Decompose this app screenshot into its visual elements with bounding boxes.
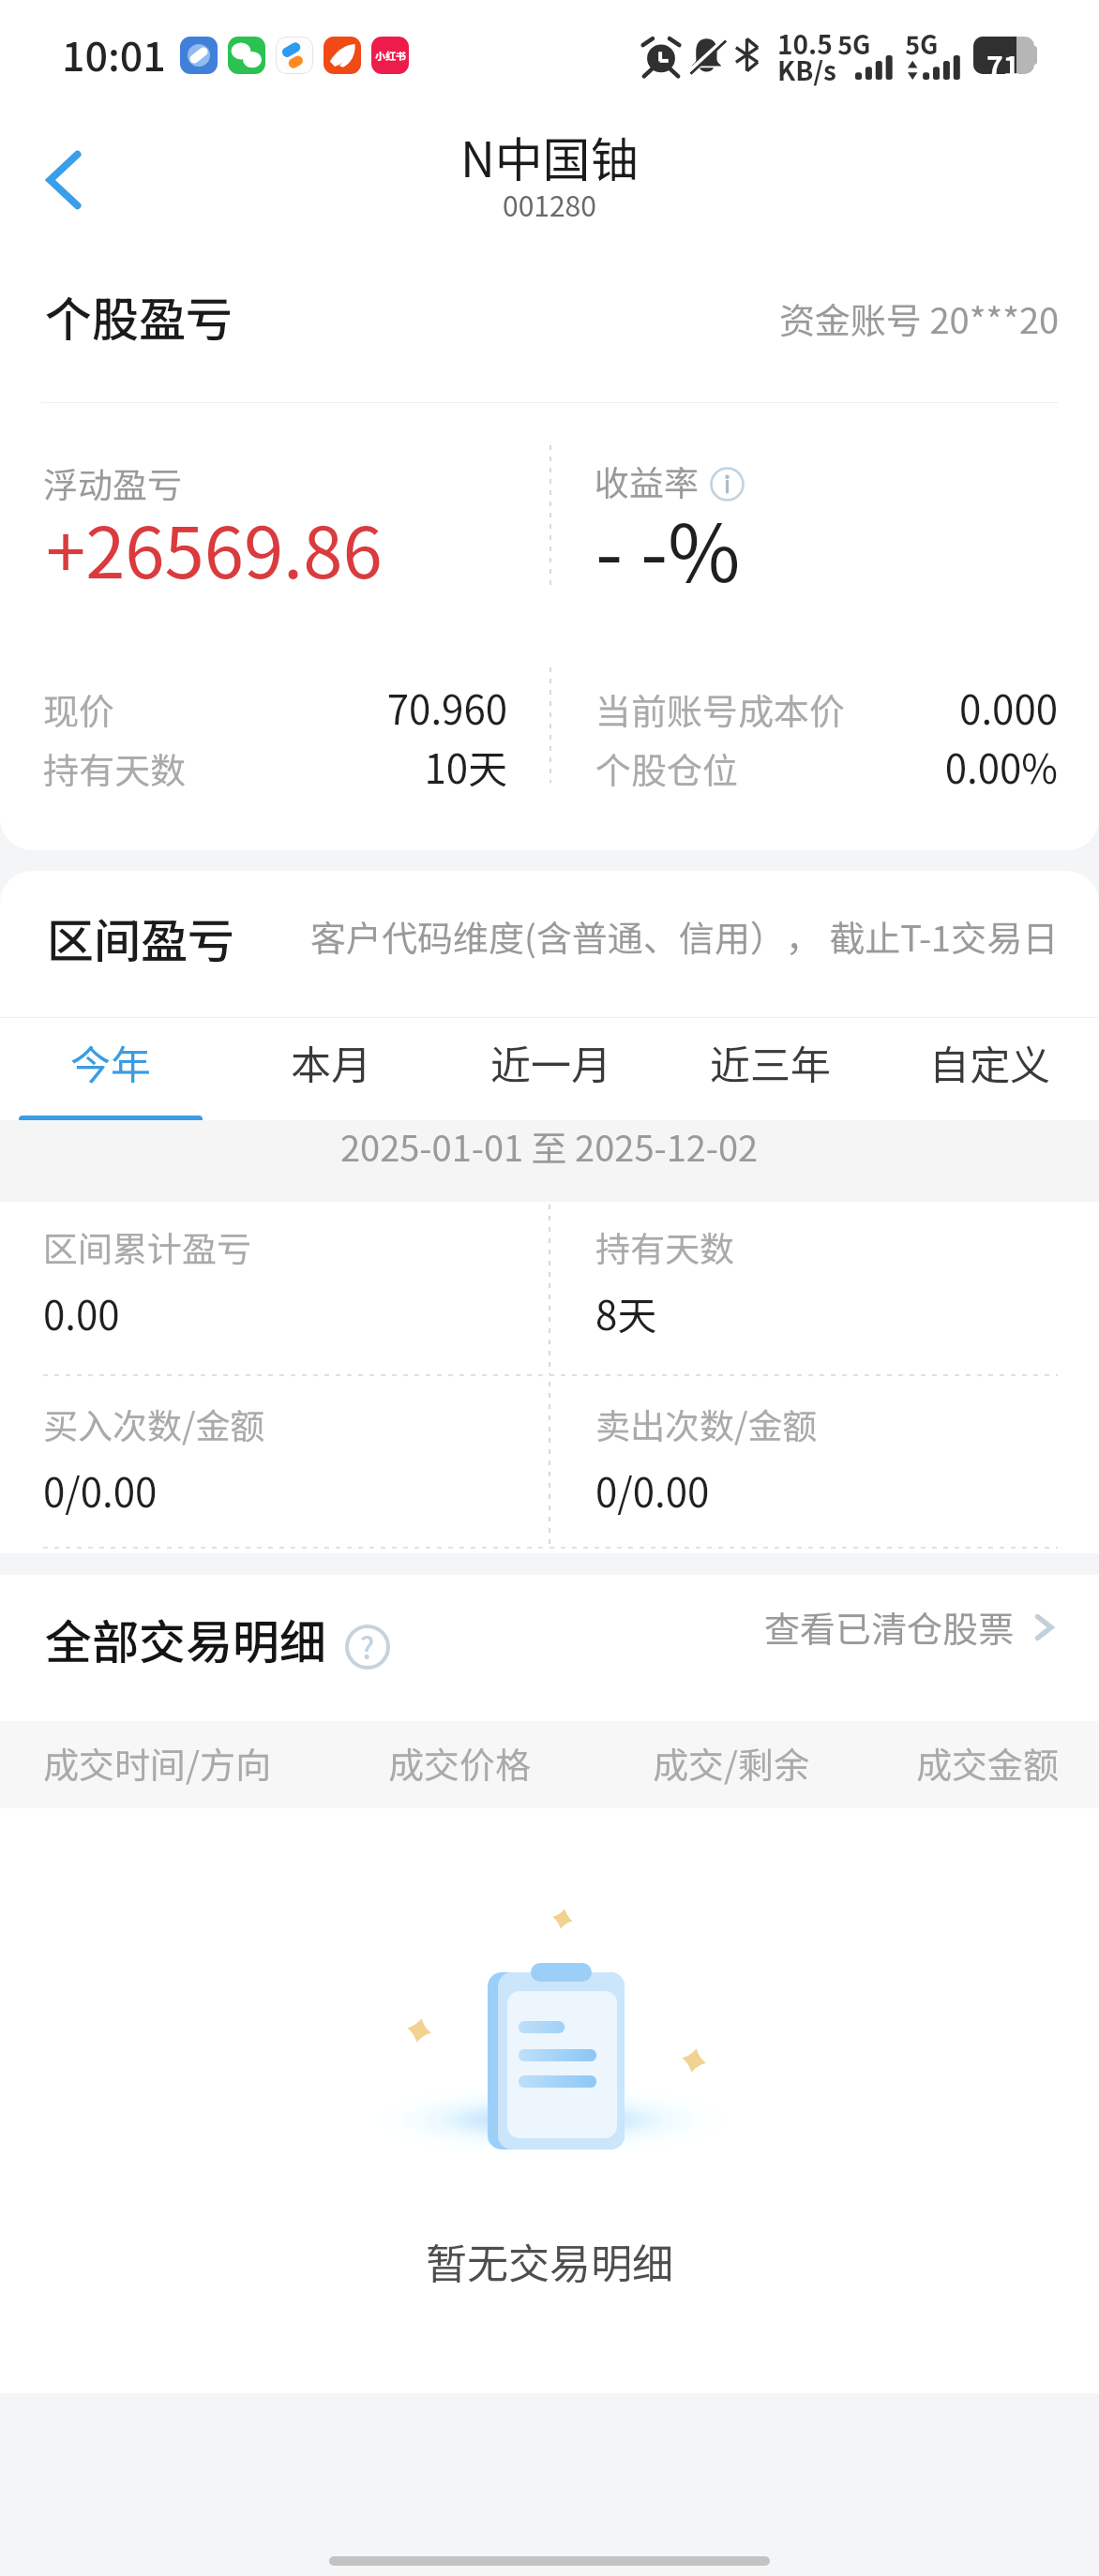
staticText: +26569.86 [46,496,383,599]
staticText: - -% [595,491,741,606]
staticText: 卖出次数/金额 [595,1399,818,1449]
staticText: 现价 [43,683,115,735]
staticText: 自定义 [929,1033,1050,1091]
staticText: 全部交易明细 [45,1605,326,1672]
staticText: 0.00% [683,738,1058,795]
staticText: 持有天数 [43,742,187,794]
staticText: 个股仓位 [595,742,739,794]
staticText: 小红书 [375,48,406,63]
staticText: 个股盈亏 [45,282,233,350]
staticText: 近一月 [490,1033,611,1091]
staticText: 5G [905,25,939,62]
staticText: 查看已清仓股票 [764,1601,1015,1653]
staticText: 浮动盈亏 [43,457,182,508]
button[interactable]: Back [34,145,103,215]
staticText: 10:01 [62,24,166,82]
staticText: ? [360,1625,375,1668]
staticText: 成交价格 [388,1737,532,1789]
staticText: KB/s [777,51,836,89]
staticText: 成交/剩余 [653,1737,809,1789]
staticText: 本月 [291,1033,371,1091]
staticText: 持有天数 [595,1221,734,1272]
staticText: 成交金额 [916,1737,1060,1789]
button[interactable]: 本月 [220,1011,441,1113]
staticText: 区间累计盈亏 [43,1221,251,1272]
staticText: 10.5 [777,24,833,63]
button[interactable]: 今年 [0,1011,220,1113]
staticText: 0.000 [683,679,1058,736]
staticText: 0/0.00 [43,1461,158,1519]
button[interactable]: Rate of return info [710,467,745,502]
staticText: 10天 [132,738,507,795]
staticText: 0.00 [43,1284,120,1341]
staticText: 当前账号成本价 [595,683,846,735]
button[interactable]: Help [345,1625,390,1670]
staticText: 买入次数/金额 [43,1399,265,1449]
staticText: 成交时间/方向 [43,1737,271,1789]
staticText: 001280 [503,184,596,224]
staticText: N中国铀 [460,122,639,191]
staticText: 近三年 [710,1033,831,1091]
staticText: 0/0.00 [595,1461,710,1519]
staticText: 暂无交易明细 [426,2231,673,2291]
button[interactable]: 近一月 [441,1011,660,1113]
staticText: 71 [986,44,1020,74]
staticText: 5G [837,25,871,62]
button[interactable]: 查看已清仓股票 [764,1601,1065,1653]
staticText: 8天 [595,1284,657,1341]
staticText: 资金账号 20***20 [779,292,1060,344]
button[interactable]: 自定义 [880,1011,1099,1113]
staticText: 2025-01-01 至 2025-12-02 [340,1120,759,1172]
staticText: 客户代码维度(含普通、信用）， 截止T-1交易日 [310,910,1059,962]
staticText: 今年 [70,1033,151,1091]
staticText: 区间盈亏 [47,904,234,971]
staticText: 70.960 [132,679,507,736]
button[interactable]: 近三年 [660,1011,880,1113]
staticText: 收益率 [595,456,699,506]
